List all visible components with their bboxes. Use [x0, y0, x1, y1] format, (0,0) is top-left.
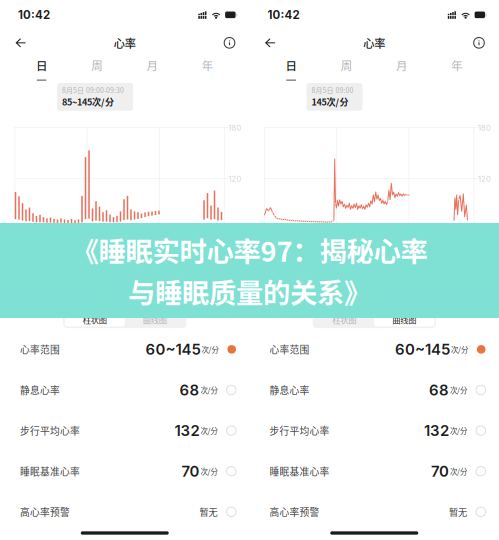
staticText: 与睡眠质量的关系》	[128, 271, 371, 311]
staticText: 《睡眠实时心率97：揭秘心率	[71, 230, 427, 269]
staticText: 60~145	[145, 340, 200, 358]
staticText: 年	[202, 57, 213, 73]
staticText: 次/分	[450, 425, 467, 436]
button[interactable]: 说明	[215, 30, 243, 56]
staticText: 静息心率	[269, 383, 309, 397]
staticText: 月	[396, 57, 407, 73]
staticText: 步行平均心率	[269, 424, 329, 438]
staticText: 年	[451, 57, 462, 73]
staticText: 暂无	[449, 505, 467, 518]
staticText: 次/分	[201, 385, 218, 395]
staticText: 70	[182, 462, 200, 480]
button[interactable]: 柱状图	[314, 312, 374, 326]
button[interactable]: 柱状图	[65, 312, 125, 326]
staticText: 次/分	[201, 344, 218, 355]
staticText: 145次/分	[311, 95, 348, 108]
button[interactable]: 曲线图	[125, 312, 185, 326]
staticText: 68	[180, 381, 200, 399]
staticText: 180	[228, 123, 241, 132]
staticText: 心率	[114, 35, 136, 51]
staticText: 步行平均心率	[20, 424, 80, 438]
staticText: 10:42	[267, 8, 299, 22]
staticText: 10:42	[18, 8, 50, 22]
staticText: 周	[91, 57, 102, 73]
button[interactable]: 月	[124, 56, 180, 84]
button[interactable]: 日	[14, 56, 69, 84]
button[interactable]: 心率范围	[249, 329, 499, 370]
staticText: 120	[228, 174, 241, 183]
button[interactable]: 日	[263, 56, 319, 84]
staticText: 月	[147, 57, 158, 73]
staticText: 次/分	[450, 385, 467, 395]
staticText: 心率范围	[20, 342, 60, 356]
staticText: 曲线图	[392, 314, 416, 326]
button[interactable]: 周	[69, 56, 124, 84]
button[interactable]: 返回	[256, 30, 284, 56]
staticText: 次/分	[201, 425, 218, 436]
staticText: 日	[36, 57, 47, 73]
staticText: 睡眠基准心率	[20, 464, 80, 478]
button[interactable]: 返回	[6, 30, 34, 56]
button[interactable]: 曲线图	[374, 312, 434, 326]
staticText: 心率范围	[269, 342, 309, 356]
staticText: 8月5日 09:00	[311, 85, 353, 95]
staticText: 60~145	[395, 340, 450, 358]
staticText: 周	[341, 57, 352, 73]
button[interactable]: 睡眠基准心率	[249, 451, 499, 491]
staticText: 68	[429, 381, 449, 399]
button[interactable]: 月	[374, 56, 429, 84]
staticText: 180	[478, 123, 491, 132]
staticText: 睡眠基准心率	[269, 464, 329, 478]
staticText: 高心率预警	[269, 505, 319, 519]
staticText: 8月5日 09:00-09:30	[62, 85, 124, 95]
staticText: 次/分	[201, 466, 218, 477]
button[interactable]: 静息心率	[0, 370, 249, 410]
button[interactable]: 步行平均心率	[0, 410, 249, 451]
button[interactable]: 周	[319, 56, 374, 84]
staticText: 132	[175, 422, 200, 440]
staticText: 120	[478, 174, 491, 183]
staticText: 柱状图	[332, 314, 356, 326]
staticText: 次/分	[450, 466, 467, 477]
button[interactable]: 高心率预警	[0, 491, 249, 532]
staticText: 心率	[363, 35, 385, 51]
staticText: 日	[286, 57, 297, 73]
staticText: 静息心率	[20, 383, 60, 397]
staticText: 132	[424, 422, 449, 440]
button[interactable]: 年	[429, 56, 484, 84]
button[interactable]: 高心率预警	[249, 491, 499, 532]
staticText: 次/分	[451, 344, 468, 355]
staticText: 85~145次/分	[62, 95, 114, 108]
button[interactable]: 说明	[465, 30, 493, 56]
staticText: 柱状图	[83, 314, 107, 326]
button[interactable]: 年	[180, 56, 235, 84]
staticText: 曲线图	[143, 314, 167, 326]
staticText: 高心率预警	[20, 505, 70, 519]
button[interactable]: 心率范围	[0, 329, 249, 370]
button[interactable]: 睡眠基准心率	[0, 451, 249, 491]
button[interactable]: 静息心率	[249, 370, 499, 410]
staticText: 70	[431, 462, 449, 480]
button[interactable]: 步行平均心率	[249, 410, 499, 451]
staticText: 暂无	[200, 505, 218, 518]
